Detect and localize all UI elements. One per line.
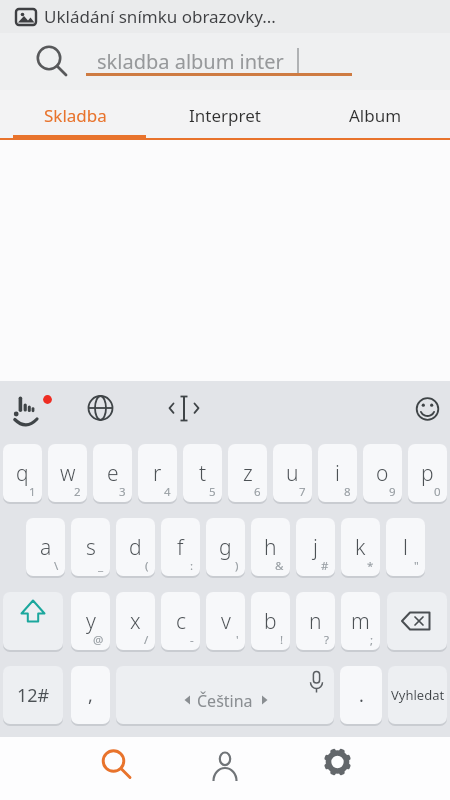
button[interactable] <box>6 387 54 433</box>
button[interactable]: n <box>296 592 335 650</box>
staticText: _ <box>98 558 104 574</box>
staticText: ( <box>145 558 149 574</box>
staticText: , <box>88 683 93 708</box>
staticText: ) <box>235 558 239 574</box>
button[interactable]: f <box>161 518 200 576</box>
staticText: 4 <box>164 484 171 500</box>
staticText: 0 <box>434 484 441 500</box>
staticText: " <box>414 558 419 574</box>
button[interactable]: Skladba <box>0 90 150 140</box>
staticText: m <box>351 607 370 636</box>
staticText: g <box>219 533 232 562</box>
staticText: o <box>376 459 389 488</box>
button[interactable]: skladba album inter <box>0 33 450 90</box>
staticText: z <box>243 459 253 488</box>
button[interactable]: e <box>93 444 132 502</box>
button[interactable]: m <box>341 592 380 650</box>
staticText: 8 <box>344 484 351 500</box>
button[interactable] <box>77 387 125 433</box>
staticText: n <box>309 607 322 636</box>
staticText: r <box>153 459 162 488</box>
staticText: Čeština <box>197 690 253 712</box>
staticText: 3 <box>119 484 126 500</box>
button[interactable]: q <box>3 444 42 502</box>
button[interactable]: b <box>251 592 290 650</box>
staticText: 7 <box>299 484 306 500</box>
staticText: k <box>355 533 366 562</box>
staticText: 1 <box>29 484 36 500</box>
staticText: p <box>421 459 434 488</box>
button[interactable]: , <box>71 666 110 724</box>
button[interactable]: u <box>273 444 312 502</box>
staticText: d <box>129 533 142 562</box>
staticText: 12# <box>17 683 50 708</box>
staticText: Album <box>349 104 402 127</box>
staticText: w <box>60 459 76 488</box>
staticText: * <box>367 558 374 574</box>
staticText: a <box>40 533 52 562</box>
button[interactable]: Vyhledat <box>388 666 447 724</box>
button[interactable]: s <box>71 518 110 576</box>
button[interactable]: v <box>206 592 245 650</box>
button[interactable]: . <box>340 666 382 724</box>
staticText: # <box>321 558 329 574</box>
staticText: / <box>144 632 149 648</box>
button[interactable] <box>404 387 448 433</box>
button[interactable] <box>301 737 373 800</box>
button[interactable]: w <box>48 444 87 502</box>
staticText: c <box>176 607 186 636</box>
staticText: 9 <box>389 484 396 500</box>
button[interactable] <box>3 592 63 650</box>
button[interactable]: z <box>228 444 267 502</box>
staticText: x <box>130 607 141 636</box>
staticText: & <box>275 558 284 574</box>
staticText: j <box>313 533 318 562</box>
button[interactable]: x <box>116 592 155 650</box>
button[interactable] <box>189 737 261 800</box>
button[interactable]: j <box>296 518 335 576</box>
button[interactable]: o <box>363 444 402 502</box>
staticText: Ukládání snímku obrazovky... <box>44 5 276 28</box>
staticText: . <box>359 683 364 708</box>
staticText: t <box>199 459 207 488</box>
button[interactable]: l <box>386 518 425 576</box>
staticText: l <box>403 533 408 562</box>
staticText: s <box>86 533 96 562</box>
staticText: Interpret <box>189 104 261 127</box>
staticText: 2 <box>74 484 81 500</box>
button[interactable]: r <box>138 444 177 502</box>
button[interactable] <box>77 737 149 800</box>
staticText: Skladba <box>44 104 107 127</box>
button[interactable]: a <box>26 518 65 576</box>
staticText: : <box>190 558 194 574</box>
staticText: i <box>335 459 340 488</box>
button[interactable] <box>116 666 334 724</box>
button[interactable]: h <box>251 518 290 576</box>
staticText: 6 <box>254 484 261 500</box>
button[interactable]: Interpret <box>150 90 300 140</box>
button[interactable]: c <box>161 592 200 650</box>
button[interactable] <box>387 592 447 650</box>
button[interactable] <box>160 387 208 433</box>
staticText: ' <box>236 632 239 648</box>
button[interactable]: g <box>206 518 245 576</box>
staticText: \ <box>54 558 59 574</box>
staticText: 5 <box>209 484 216 500</box>
button[interactable]: p <box>408 444 447 502</box>
button[interactable]: Album <box>300 90 450 140</box>
staticText: e <box>107 459 119 488</box>
staticText: ? <box>324 632 329 648</box>
button[interactable]: y <box>71 592 110 650</box>
staticText: f <box>177 533 184 562</box>
staticText: ! <box>280 632 284 648</box>
staticText: v <box>221 607 231 636</box>
staticText: b <box>264 607 277 636</box>
staticText: @ <box>93 632 104 648</box>
button[interactable]: t <box>183 444 222 502</box>
button[interactable]: k <box>341 518 380 576</box>
button[interactable]: i <box>318 444 357 502</box>
button[interactable]: d <box>116 518 155 576</box>
button[interactable]: 12# <box>3 666 63 724</box>
staticText: skladba album inter <box>97 48 284 75</box>
staticText: Vyhledat <box>391 686 445 704</box>
